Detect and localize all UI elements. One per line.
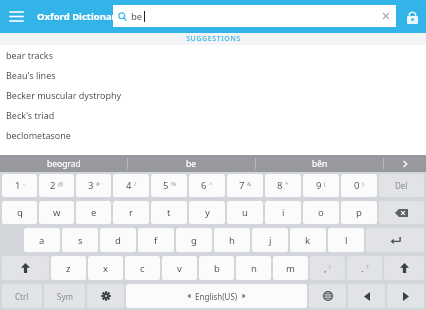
staticText: / [134, 180, 137, 188]
staticText: b [214, 262, 220, 275]
staticText: 5 [163, 179, 169, 192]
button[interactable]: Del [379, 174, 424, 197]
staticText: c [140, 262, 145, 275]
button[interactable]: t [151, 201, 187, 224]
staticText: e [91, 206, 97, 219]
button[interactable]: be [113, 5, 396, 27]
staticText: . [361, 262, 364, 275]
staticText: p [356, 206, 362, 219]
button[interactable]: v [162, 256, 197, 280]
button[interactable]: beograd [0, 155, 127, 172]
button[interactable]: e [76, 201, 111, 224]
button[interactable]: a [24, 228, 60, 252]
staticText: Becker muscular dystrophy [6, 89, 122, 101]
staticText: % [171, 180, 176, 188]
button[interactable]: be [128, 155, 255, 172]
button[interactable]: Ctrl [2, 284, 42, 308]
staticText: 1 [15, 179, 21, 192]
staticText: beclometasone [6, 129, 71, 141]
button[interactable]: Open navigation menu [0, 0, 33, 33]
staticText: d [115, 234, 121, 247]
button[interactable]: 6 [189, 174, 225, 197]
button[interactable]: x [88, 256, 123, 280]
staticText: 9 [316, 179, 322, 192]
staticText: 8 [277, 179, 283, 192]
button[interactable]: 5 [151, 174, 187, 197]
staticText: h [229, 234, 235, 247]
staticText: v [177, 262, 182, 275]
button[interactable]: . [347, 256, 382, 280]
button[interactable]: l [328, 228, 364, 252]
staticText: Del [395, 180, 408, 191]
button[interactable]: Move cursor left [348, 284, 385, 308]
staticText: Ctrl [15, 291, 29, 302]
staticText: be [186, 158, 197, 170]
staticText: SUGGESTIONS [186, 34, 241, 44]
button[interactable]: h [214, 228, 250, 252]
button[interactable]: Shift [384, 256, 424, 280]
staticText: z [66, 262, 71, 275]
button[interactable]: Backspace [379, 201, 424, 224]
button[interactable]: Beck's triad [0, 105, 426, 125]
button[interactable]: f [138, 228, 174, 252]
button[interactable]: 1 [2, 174, 37, 197]
button[interactable]: , [310, 256, 345, 280]
button[interactable]: r [113, 201, 149, 224]
button[interactable]: Beau's lines [0, 65, 426, 85]
button[interactable]: b [199, 256, 234, 280]
button[interactable]: Keyboard settings [87, 284, 124, 308]
button[interactable]: Shift [2, 256, 49, 280]
button[interactable]: d [100, 228, 136, 252]
staticText: 6 [201, 179, 207, 192]
staticText: # [96, 180, 100, 188]
button[interactable]: o [303, 201, 339, 224]
button[interactable]: 0 [341, 174, 377, 197]
button[interactable]: Becker muscular dystrophy [0, 85, 426, 105]
staticText: ( [324, 180, 326, 188]
staticText: ) [362, 180, 364, 188]
button[interactable]: s [62, 228, 98, 252]
staticText: n [251, 262, 257, 275]
button[interactable]: u [227, 201, 263, 224]
button[interactable]: bên [256, 155, 383, 172]
button[interactable]: Enter [366, 228, 424, 252]
button[interactable]: y [189, 201, 225, 224]
staticText: g [191, 234, 197, 247]
staticText: t [167, 206, 171, 219]
staticText: u [242, 206, 248, 219]
staticText: & [247, 180, 252, 188]
button[interactable]: q [2, 201, 37, 224]
button[interactable]: 3 [76, 174, 111, 197]
button[interactable]: Change language [309, 284, 346, 308]
button[interactable]: 9 [303, 174, 339, 197]
button[interactable]: English(US) [126, 284, 307, 308]
staticText: * [285, 180, 289, 188]
staticText: 3 [88, 179, 94, 192]
staticText: 7 [239, 179, 245, 192]
staticText: i [282, 206, 285, 219]
button[interactable]: z [51, 256, 86, 280]
button[interactable]: m [273, 256, 308, 280]
button[interactable]: j [252, 228, 288, 252]
button[interactable]: k [290, 228, 326, 252]
button[interactable]: p [341, 201, 377, 224]
button[interactable]: i [265, 201, 301, 224]
button[interactable]: 2 [39, 174, 74, 197]
button[interactable]: beclometasone [0, 125, 426, 145]
button[interactable]: bear tracks [0, 45, 426, 65]
staticText: ! [329, 263, 331, 271]
button[interactable]: 7 [227, 174, 263, 197]
button[interactable]: w [39, 201, 74, 224]
button[interactable]: 4 [113, 174, 149, 197]
staticText: j [269, 234, 272, 247]
button[interactable]: c [125, 256, 160, 280]
button[interactable]: Lock [398, 3, 426, 31]
button[interactable]: 8 [265, 174, 301, 197]
button[interactable]: More suggestions [384, 155, 426, 172]
button[interactable]: Sym [44, 284, 85, 308]
button[interactable]: Move cursor right [387, 284, 424, 308]
button[interactable]: Clear query [376, 6, 396, 26]
staticText: o [318, 206, 324, 219]
button[interactable]: g [176, 228, 212, 252]
button[interactable]: n [236, 256, 271, 280]
